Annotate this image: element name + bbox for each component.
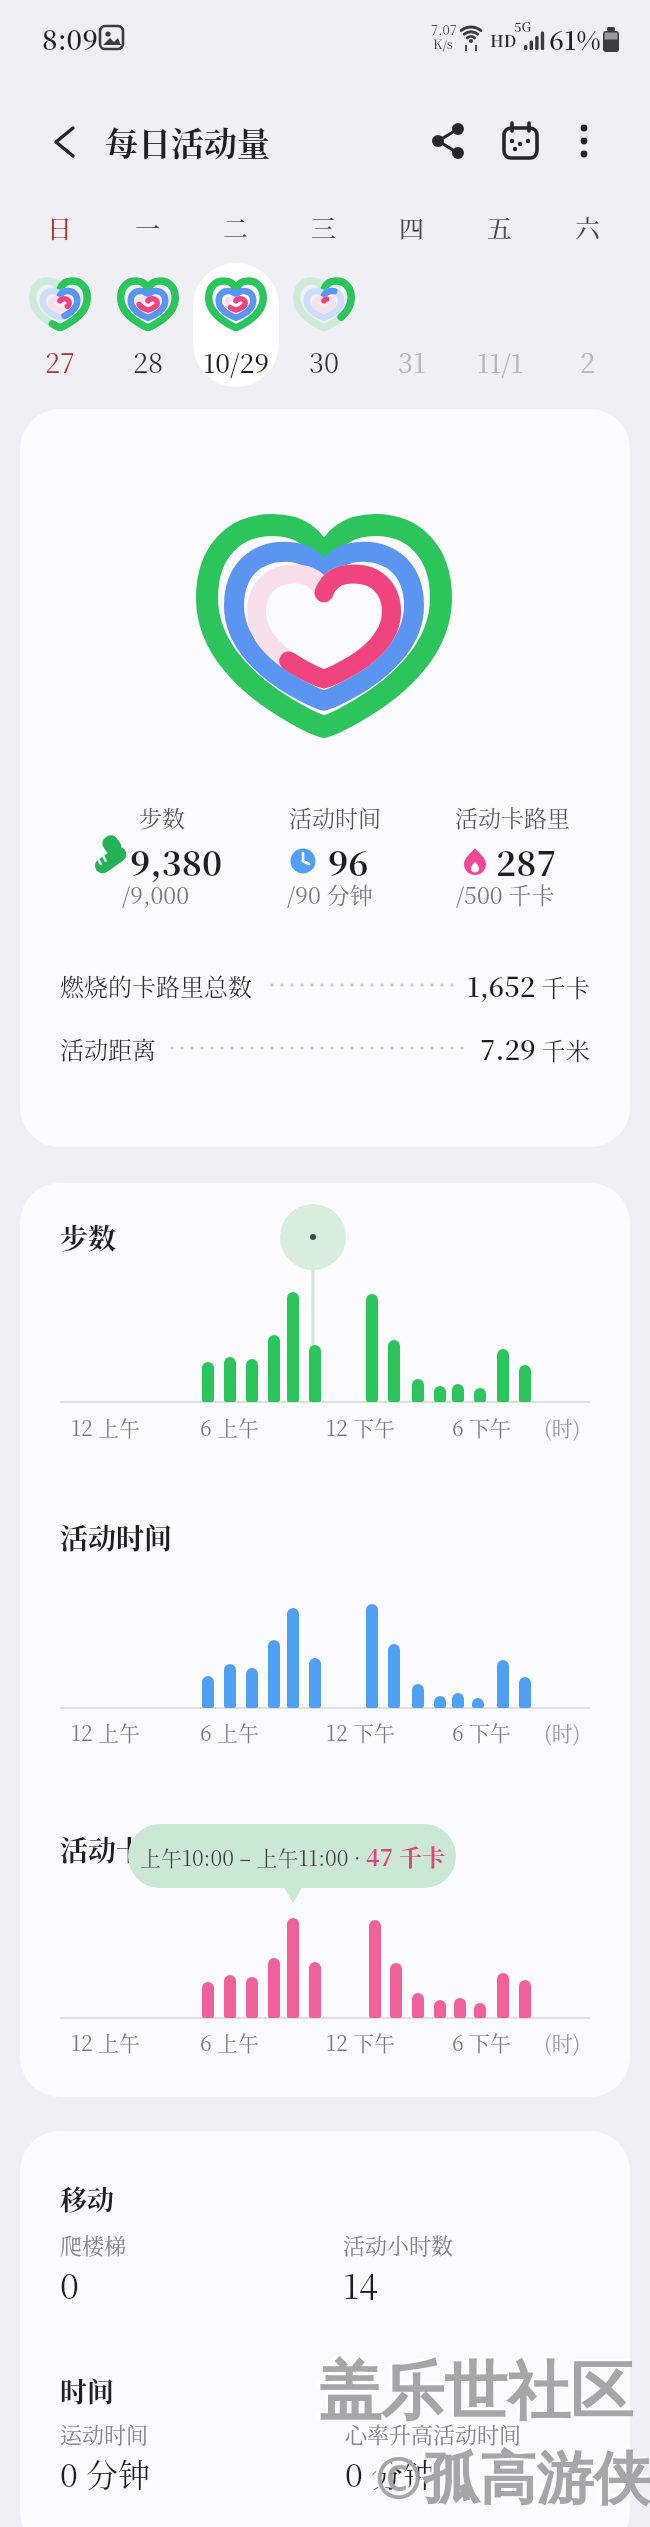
staticText: 96 [328,837,369,886]
staticText: 0 分钟 [345,2450,436,2496]
staticText: 三 [311,209,337,245]
button[interactable]: 一 [104,202,192,252]
staticText: 盖乐世社区 [318,2352,633,2431]
staticText: (时) [544,1717,581,1747]
staticText: 12 下午 [326,1412,395,1442]
staticText: 7.07 [431,20,457,39]
staticText: 六 [575,209,601,245]
button[interactable] [497,118,543,164]
staticText: ©孤高游侠 [375,2437,650,2515]
staticText: 每日活动量 [105,118,270,165]
staticText: 6 上午 [200,1717,260,1747]
staticText: 12 上午 [71,2027,140,2057]
staticText: /9,000 [122,878,189,911]
staticText: 上午10:00 – 上午11:00 · 47 千卡 [140,1840,445,1873]
button[interactable]: 上午10:00 – 上午11:00 · 47 千卡 [128,1824,456,1888]
button[interactable]: 二 [192,202,280,252]
button[interactable]: 活动距离 [60,1024,156,1072]
button[interactable] [40,115,90,167]
staticText: 活动卡路里 [60,1829,201,1869]
button[interactable] [561,118,607,164]
staticText: K/s [433,34,453,53]
staticText: 5G [514,17,532,36]
staticText: 6 下午 [452,1412,512,1442]
staticText: 12 下午 [326,1717,395,1747]
button[interactable]: 五 [456,202,544,252]
staticText: 31 [398,342,426,381]
staticText: 6 上午 [200,2027,260,2057]
staticText: 活动时间 [60,1517,173,1557]
staticText: 四 [399,209,425,245]
staticText: 步数 [139,801,185,834]
staticText: 五 [487,209,513,245]
button[interactable]: 四 [368,202,456,252]
staticText: 12 下午 [326,2027,395,2057]
button[interactable] [240,795,416,915]
staticText: 2 [580,342,596,381]
staticText: 时间 [60,2371,114,2410]
staticText: 心率升高活动时间 [345,2418,522,2450]
staticText: 二 [223,209,249,245]
staticText: 1,652 千卡 [467,966,590,1005]
staticText: 8:09 [42,19,98,58]
staticText: 12 上午 [71,1717,140,1747]
staticText: 步数 [60,1217,117,1257]
staticText: 移动 [60,2179,114,2218]
staticText: 6 下午 [452,1717,512,1747]
staticText: /500 千卡 [456,878,555,911]
staticText: /90 分钟 [287,878,373,911]
button[interactable]: 三 [280,202,368,252]
button[interactable]: 日 [16,202,104,252]
staticText: 27 [45,342,75,381]
button[interactable] [425,118,471,164]
staticText: 11/1 [477,343,523,380]
staticText: 活动小时数 [343,2229,454,2261]
staticText: (时) [544,2027,581,2057]
staticText: 6 下午 [452,2027,512,2057]
staticText: 活动时间 [289,801,381,834]
staticText: 12 上午 [71,1412,140,1442]
staticText: 活动卡路里 [455,801,570,834]
button[interactable]: 燃烧的卡路里总数 [60,961,252,1009]
staticText: 一 [135,209,161,245]
staticText: 10/29 [203,343,270,380]
staticText: 30 [309,342,340,381]
button[interactable] [193,263,279,387]
staticText: 14 [343,2260,378,2309]
staticText: 日 [47,209,73,245]
staticText: 9,380 [130,837,223,886]
button[interactable] [417,795,593,915]
staticText: 运动时间 [60,2418,149,2450]
button[interactable]: 六 [544,202,632,252]
staticText: 爬楼梯 [60,2229,127,2261]
staticText: HD [490,29,517,52]
staticText: 61% [549,20,601,57]
staticText: 6 上午 [200,1412,260,1442]
staticText: 28 [133,342,164,381]
staticText: (时) [544,1412,581,1442]
staticText: 287 [496,837,557,886]
staticText: 0 分钟 [60,2450,151,2496]
staticText: 活动距离 [60,1031,156,1065]
staticText: 7.29 千米 [480,1029,590,1068]
button[interactable] [67,795,243,915]
staticText: 燃烧的卡路里总数 [60,968,252,1002]
staticText: 0 [60,2260,79,2309]
